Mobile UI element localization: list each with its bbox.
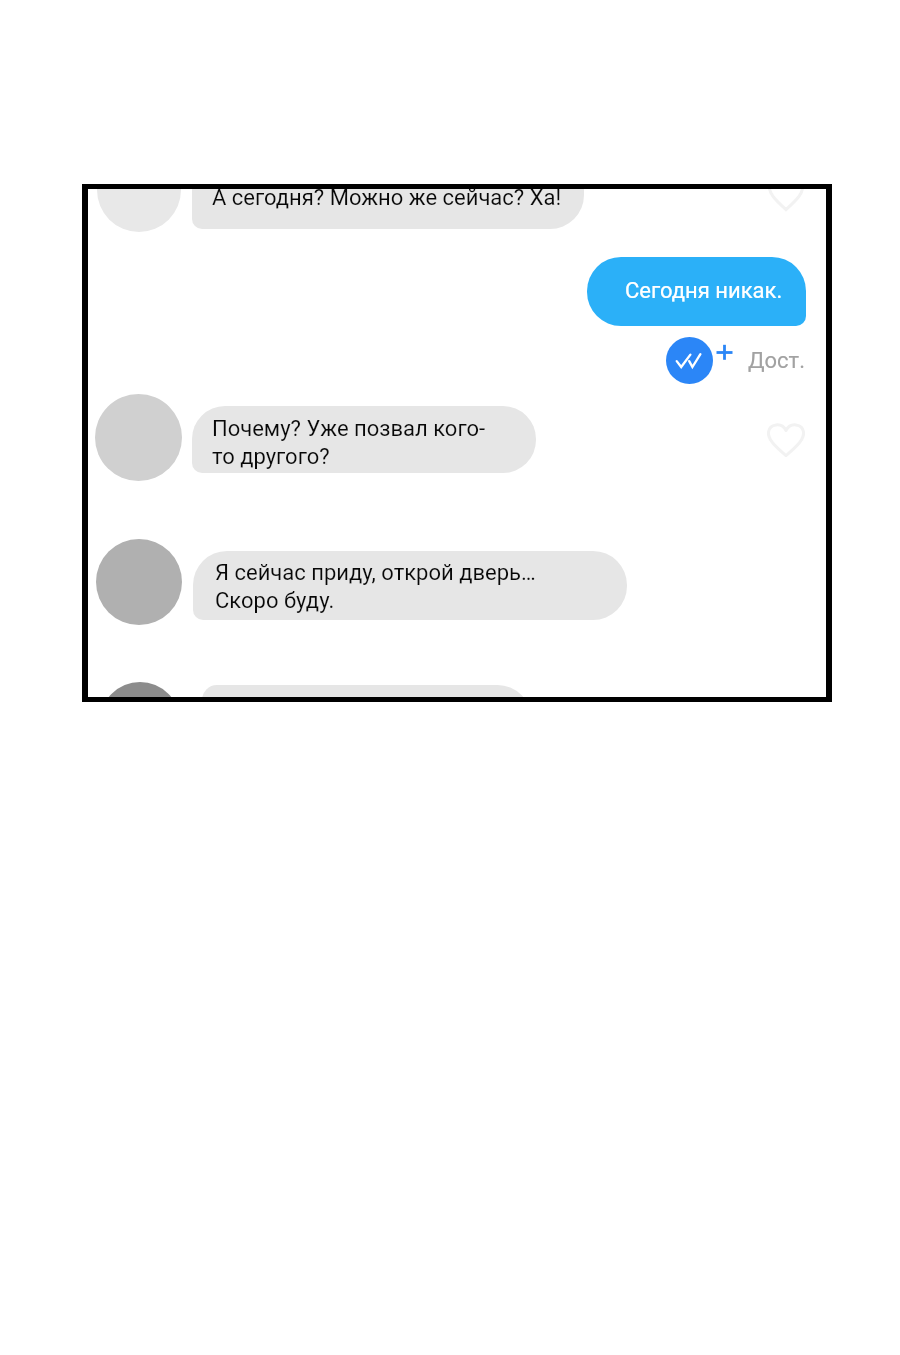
staticText: Почему? Уже позвал кого- то другого? <box>212 416 486 470</box>
button[interactable]: Like <box>767 423 805 457</box>
button[interactable]: Profile photo <box>96 539 182 625</box>
button[interactable]: Add reaction <box>716 344 733 361</box>
button[interactable]: Profile photo <box>100 682 180 697</box>
button[interactable]: Я сейчас приду, открой дверь… Скоро буду… <box>193 551 627 620</box>
button[interactable]: Profile photo <box>95 394 182 481</box>
staticText: Я сейчас приду, открой дверь… Скоро буду… <box>215 560 536 614</box>
button[interactable]: Delivered <box>666 337 713 384</box>
button[interactable]: А сегодня? Можно же сейчас? Ха! <box>192 189 584 229</box>
staticText: А сегодня? Можно же сейчас? Ха! <box>212 189 562 211</box>
button[interactable]: Почему? Уже позвал кого- то другого? <box>192 406 536 473</box>
button[interactable]: Like <box>768 189 804 211</box>
staticText: Сегодня никак. <box>625 278 783 304</box>
button[interactable]: Profile photo <box>97 189 181 232</box>
button[interactable]: Сегодня никак. <box>587 257 806 326</box>
staticText: Дост. <box>748 348 805 374</box>
button[interactable] <box>202 685 531 697</box>
